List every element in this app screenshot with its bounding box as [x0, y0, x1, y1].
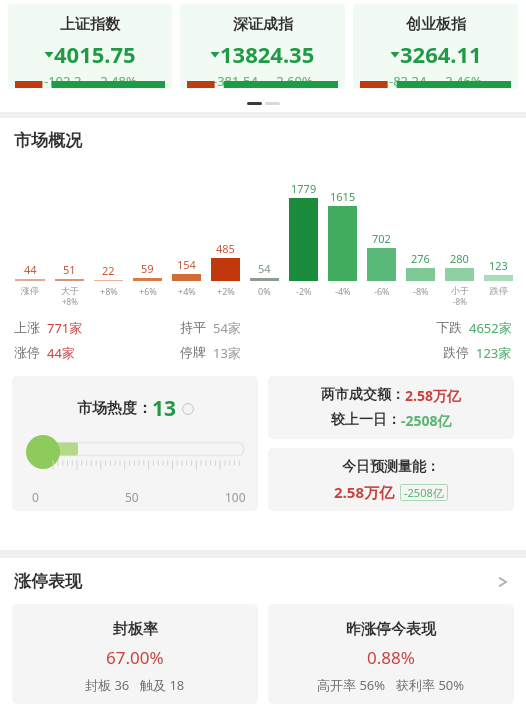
other: More [496, 574, 512, 590]
staticText: -381.54 [213, 72, 258, 89]
staticText: 市场概况 [14, 130, 82, 151]
staticText: 较上一日： [331, 411, 401, 429]
staticText: 停牌 [180, 344, 206, 360]
staticText: 涨停 [14, 344, 40, 360]
staticText: 0 [32, 489, 39, 505]
staticText: 485 [216, 241, 235, 256]
button[interactable]: 昨涨停今表现 [268, 604, 514, 704]
staticText: 昨涨停今表现 [346, 620, 436, 639]
staticText: 持平 [180, 319, 206, 335]
button[interactable]: 封板率 [12, 604, 258, 704]
staticText: 2.58万亿 [334, 482, 394, 502]
staticText: 创业板指 [406, 15, 466, 34]
staticText: 702 [372, 231, 391, 246]
staticText: 771家 [47, 319, 83, 337]
staticText: 大于 [61, 285, 79, 296]
staticText: 13家 [213, 344, 241, 362]
button[interactable]: 深证成指 [180, 4, 345, 89]
staticText: 封板率 [113, 620, 158, 639]
staticText: 涨停 [21, 285, 39, 296]
button[interactable]: 上证指数 [8, 4, 172, 89]
button[interactable]: 创业板指 [353, 4, 518, 89]
staticText: -2508亿 [404, 485, 444, 500]
staticText: -2.46% [441, 72, 482, 89]
staticText: 高开率 56% [317, 676, 386, 694]
staticText: 44 [24, 262, 37, 277]
staticText: 深证成指 [233, 15, 293, 34]
staticText: -2% [296, 285, 312, 297]
staticText: +4% [178, 285, 196, 297]
button[interactable]: 涨停表现 [14, 571, 512, 592]
staticText: 小于 [451, 285, 469, 296]
staticText: 100 [225, 489, 246, 505]
staticText: 两市成交额： [321, 386, 405, 404]
staticText: -6% [374, 285, 390, 297]
staticText: +6% [139, 285, 157, 297]
staticText: 50 [125, 489, 139, 505]
staticText: 涨停表现 [14, 571, 82, 592]
staticText: 3264.11 [400, 39, 482, 69]
staticText: 44家 [47, 344, 75, 362]
staticText: 2.58万亿 [405, 386, 461, 405]
button[interactable]: 两市成交额： [268, 376, 514, 439]
staticText: -102.2 [44, 72, 82, 89]
staticText: 67.00% [106, 646, 164, 669]
staticText: 54 [258, 261, 271, 276]
staticText: 获利率 50% [396, 676, 465, 694]
staticText: 市场热度： [77, 399, 152, 418]
staticText: 下跌 [436, 319, 462, 335]
button[interactable]: 今日预测量能： [268, 448, 514, 511]
staticText: -8% [453, 296, 467, 307]
staticText: 1779 [291, 181, 317, 196]
staticText: 触及 18 [140, 676, 185, 694]
staticText: -2.48% [96, 72, 137, 89]
staticText: 今日预测量能： [342, 458, 440, 476]
staticText: -4% [335, 285, 351, 297]
staticText: -82.24 [389, 72, 427, 89]
staticText: +2% [217, 285, 235, 297]
staticText: +8% [100, 285, 118, 297]
staticText: 0% [258, 285, 271, 297]
staticText: 4652家 [469, 319, 512, 337]
staticText: 封板 36 [85, 676, 130, 694]
staticText: +8% [62, 296, 78, 307]
staticText: -2.69% [272, 72, 313, 89]
staticText: 280 [450, 251, 469, 266]
staticText: 0.88% [367, 646, 415, 669]
staticText: -2508亿 [401, 411, 452, 430]
staticText: 跌停 [443, 344, 469, 360]
staticText: 上证指数 [60, 15, 120, 34]
staticText: 54家 [213, 319, 241, 337]
staticText: 276 [411, 251, 430, 266]
staticText: 上涨 [14, 319, 40, 335]
staticText: 154 [177, 257, 196, 272]
staticText: 4015.75 [54, 39, 136, 69]
staticText: 13824.35 [220, 39, 315, 69]
staticText: 22 [102, 263, 115, 278]
button[interactable]: 市场热度： [12, 376, 258, 511]
staticText: 跌停 [490, 285, 508, 296]
staticText: 1615 [330, 189, 356, 204]
staticText: 59 [141, 261, 154, 276]
staticText: 51 [63, 262, 76, 277]
staticText: 123家 [476, 344, 512, 362]
staticText: -8% [413, 285, 429, 297]
staticText: 13 [152, 394, 177, 423]
staticText: 123 [489, 258, 508, 273]
